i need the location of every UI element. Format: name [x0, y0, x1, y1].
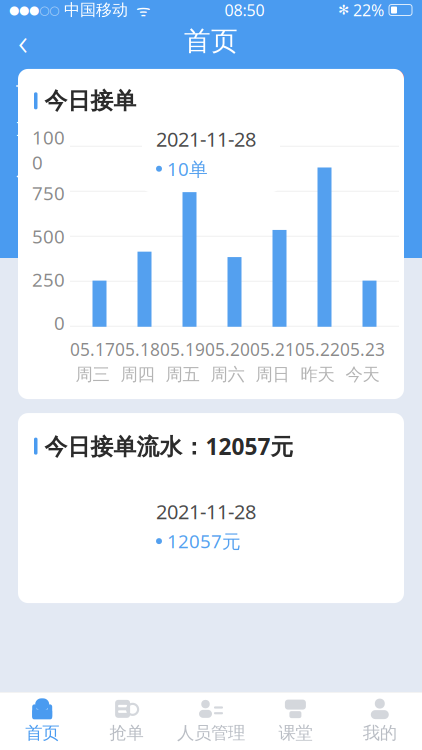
staticText: 22%: [349, 0, 388, 21]
staticText: 05.18: [115, 338, 160, 361]
staticText: 08:50: [224, 0, 264, 21]
staticText: 10单: [167, 156, 208, 181]
staticText: ●●●: [9, 3, 39, 17]
button[interactable]: Notifications: [366, 68, 406, 104]
staticText: 2021-11-28: [156, 498, 256, 525]
staticText: 家政公司名称: [81, 72, 240, 100]
staticText: 遂宁: [33, 73, 81, 99]
staticText: 课堂: [278, 722, 312, 744]
staticText: 250: [32, 267, 65, 292]
staticText: 05.21: [250, 338, 295, 361]
staticText: 05.20: [205, 338, 250, 361]
button[interactable]: 抢单: [84, 691, 169, 750]
staticText: 2021-11-28: [156, 126, 256, 152]
button[interactable]: 我的: [338, 691, 422, 750]
staticText: 中国移动: [59, 0, 128, 20]
staticText: 今日接单流水：12057元: [44, 431, 293, 461]
staticText: ᯤ: [128, 0, 151, 21]
staticText: 1000: [32, 125, 65, 175]
button[interactable]: Back: [0, 21, 46, 61]
staticText: 今日接单: [44, 87, 136, 115]
staticText: 05.23: [340, 338, 385, 361]
staticText: 首页: [184, 25, 238, 57]
button[interactable]: 课堂: [253, 691, 338, 750]
staticText: 8: [392, 69, 400, 87]
staticText: 昨天: [300, 364, 334, 385]
button[interactable]: 首页: [0, 691, 84, 750]
staticText: 05.22: [295, 338, 340, 361]
staticText: ✻: [338, 2, 349, 17]
staticText: 05.19: [160, 338, 205, 361]
staticText: 0: [54, 310, 65, 335]
staticText: 05.17: [70, 338, 115, 361]
staticText: 周四: [120, 364, 154, 385]
staticText: 我的: [363, 722, 397, 744]
staticText: 周五: [165, 364, 199, 385]
staticText: 抢单: [110, 722, 144, 744]
staticText: 500: [32, 224, 65, 249]
staticText: ○○: [39, 3, 59, 17]
staticText: 周六: [210, 364, 244, 385]
staticText: 首页: [25, 722, 59, 744]
staticText: ‹: [18, 16, 28, 66]
button[interactable]: 遂宁: [16, 72, 253, 100]
staticText: 人员管理: [177, 722, 245, 744]
staticText: 12057元: [167, 529, 241, 553]
staticText: 服务分：98分: [16, 155, 138, 181]
staticText: 750: [32, 181, 65, 205]
staticText: 周日: [255, 364, 289, 385]
staticText: 今天: [345, 364, 379, 385]
staticText: 周三: [75, 364, 109, 385]
staticText: ID:156123111: [16, 115, 142, 142]
button[interactable]: 人员管理: [169, 691, 253, 750]
